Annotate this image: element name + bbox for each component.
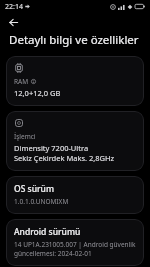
button[interactable]: Android sürümü xyxy=(6,219,144,266)
button[interactable]: OS sürüm xyxy=(6,176,144,214)
staticText: Detaylı bilgi ve özellikler xyxy=(9,32,139,48)
staticText: RAM xyxy=(14,77,29,86)
button[interactable]: Back xyxy=(5,14,22,31)
staticText: 14 UP1A.231005.007 | Android güvenlik gü… xyxy=(14,240,136,258)
staticText: Dimensity 7200-Ultra xyxy=(14,143,89,153)
staticText: 22:14 xyxy=(5,2,23,12)
staticText: 1.0.1.0.UNOMIXM xyxy=(14,197,69,206)
staticText: Android sürümü xyxy=(14,226,81,238)
staticText: OS sürüm xyxy=(14,183,54,195)
button[interactable]: RAM xyxy=(6,56,144,106)
staticText: Sekiz Çekirdek Maks. 2,8GHz xyxy=(14,153,115,163)
button[interactable]: İşlemci xyxy=(6,111,144,171)
staticText: 12,0+12,0 GB xyxy=(14,88,61,98)
staticText: İşlemci xyxy=(14,132,36,141)
